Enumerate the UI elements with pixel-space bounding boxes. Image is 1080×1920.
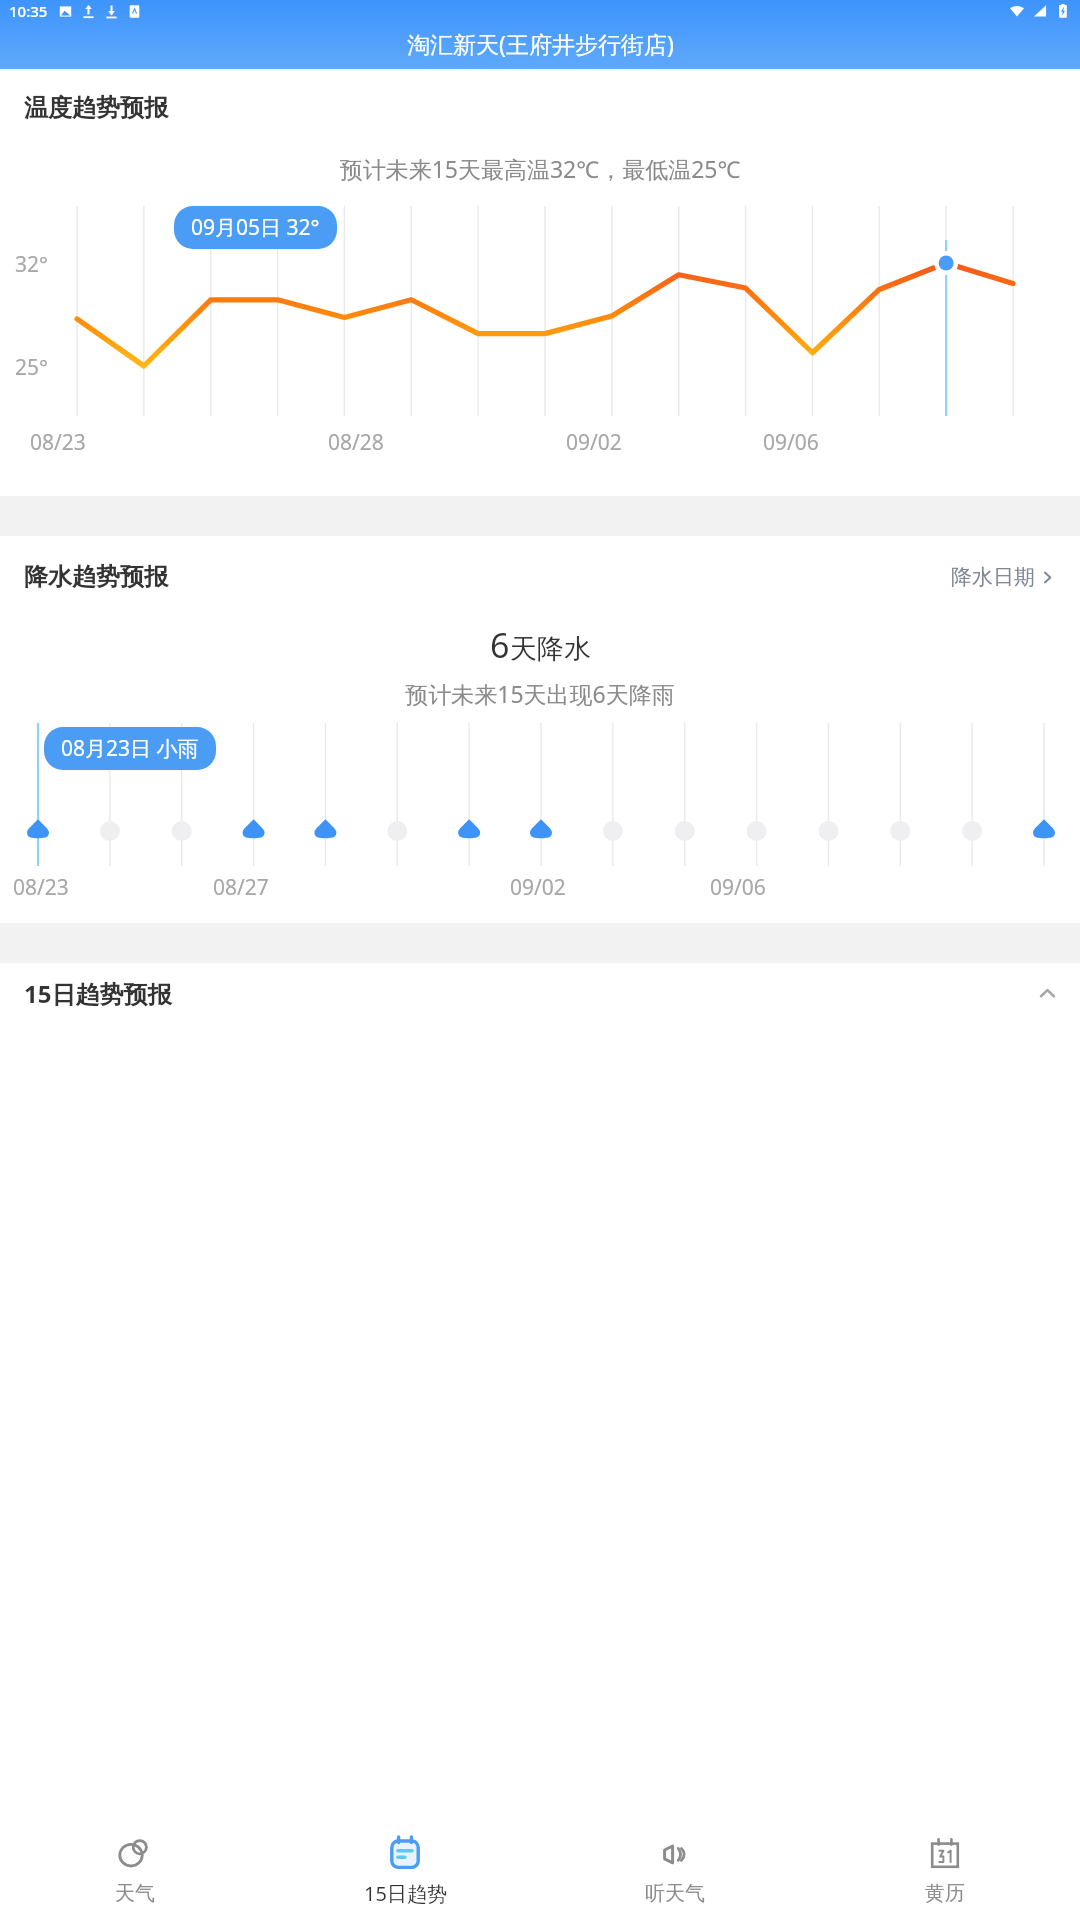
staticText: 10:35 bbox=[9, 1, 48, 21]
staticText: 32° bbox=[15, 250, 49, 279]
button[interactable]: 黄历 bbox=[810, 1820, 1080, 1920]
staticText: 听天气 bbox=[645, 1881, 705, 1906]
button[interactable]: 天气 bbox=[0, 1820, 270, 1920]
staticText: 天降水 bbox=[510, 632, 591, 666]
button[interactable]: 15日趋势 bbox=[270, 1820, 540, 1920]
staticText: 降水日期 bbox=[951, 564, 1035, 590]
staticText: 09/02 bbox=[510, 873, 566, 902]
staticText: 温度趋势预报 bbox=[24, 93, 168, 123]
staticText: 08/23 bbox=[13, 873, 69, 902]
staticText: 09/02 bbox=[566, 428, 622, 457]
staticText: 08/23 bbox=[30, 428, 86, 457]
staticText: 预计未来15天出现6天降雨 bbox=[0, 678, 1080, 709]
staticText: 08月23日 小雨 bbox=[61, 734, 199, 763]
staticText: 09月05日 32° bbox=[191, 213, 320, 242]
button[interactable]: 听天气 bbox=[540, 1820, 810, 1920]
staticText: 天气 bbox=[115, 1881, 155, 1906]
button[interactable]: 降水日期 bbox=[949, 558, 1056, 596]
staticText: 08/28 bbox=[328, 428, 384, 457]
staticText: 6 bbox=[490, 622, 510, 668]
staticText: 09/06 bbox=[710, 873, 766, 902]
staticText: 09/06 bbox=[763, 428, 819, 457]
staticText: 预计未来15天最高温32℃，最低温25℃ bbox=[0, 153, 1080, 184]
staticText: 降水趋势预报 bbox=[24, 562, 168, 592]
button[interactable]: 09月05日 32° bbox=[174, 206, 337, 249]
button[interactable]: 15日趋势预报 bbox=[0, 963, 1080, 1023]
staticText: 15日趋势 bbox=[364, 1880, 447, 1907]
button[interactable]: 08月23日 小雨 bbox=[44, 727, 216, 770]
staticText: 08/27 bbox=[213, 873, 269, 902]
staticText: 淘汇新天(王府井步行街店) bbox=[407, 28, 674, 59]
staticText: 25° bbox=[15, 353, 49, 382]
staticText: 15日趋势预报 bbox=[24, 977, 172, 1010]
staticText: 黄历 bbox=[925, 1881, 965, 1906]
